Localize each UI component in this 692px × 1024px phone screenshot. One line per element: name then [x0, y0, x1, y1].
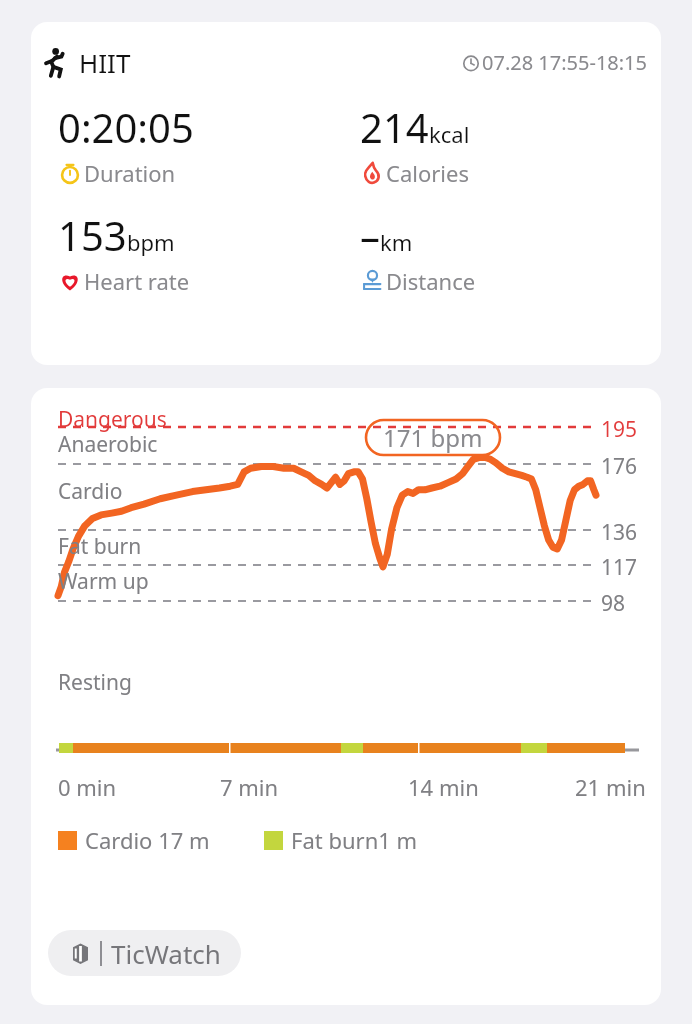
- staticText: 98: [601, 589, 626, 618]
- staticText: 7 min: [220, 772, 279, 802]
- staticText: Warm up: [58, 567, 149, 596]
- staticText: Dangerous: [58, 405, 167, 434]
- staticText: 171 bpm: [383, 421, 483, 454]
- staticText: Calories: [386, 158, 469, 188]
- staticText: Cardio: [58, 477, 123, 506]
- button[interactable]: Dangerous: [31, 388, 661, 1005]
- staticText: HIIT: [79, 45, 131, 80]
- staticText: 117: [601, 553, 638, 582]
- staticText: 14 min: [408, 772, 479, 802]
- button[interactable]: 0:20:05: [58, 100, 346, 188]
- button[interactable]: Workout type: [31, 22, 661, 365]
- other: TicWatch: [68, 941, 93, 966]
- staticText: Distance: [386, 266, 476, 296]
- staticText: Fat burn: [58, 532, 142, 561]
- staticText: –: [360, 208, 380, 262]
- button[interactable]: –: [360, 208, 661, 296]
- button[interactable]: TicWatch: [48, 930, 241, 976]
- staticText: bpm: [127, 227, 175, 257]
- staticText: Duration: [84, 158, 176, 188]
- staticText: Heart rate: [84, 266, 190, 296]
- staticText: TicWatch: [111, 936, 221, 971]
- staticText: 0 min: [58, 772, 117, 802]
- staticText: 0:20:05: [58, 100, 194, 154]
- staticText: 153: [58, 208, 127, 262]
- staticText: 07.28 17:55-18:15: [482, 49, 647, 76]
- staticText: 21 min: [575, 772, 646, 802]
- staticText: km: [380, 227, 413, 257]
- staticText: 136: [601, 518, 638, 547]
- staticText: Resting: [58, 668, 132, 697]
- button[interactable]: 153: [58, 208, 346, 296]
- staticText: Anaerobic: [58, 430, 158, 459]
- staticText: Fat burn1 m: [291, 825, 418, 855]
- staticText: 214: [360, 100, 429, 154]
- other: Workout type: [39, 47, 71, 79]
- staticText: kcal: [429, 119, 470, 149]
- staticText: Cardio 17 m: [85, 825, 210, 855]
- button[interactable]: 214: [360, 100, 661, 188]
- staticText: 176: [601, 452, 638, 481]
- staticText: 195: [601, 415, 638, 444]
